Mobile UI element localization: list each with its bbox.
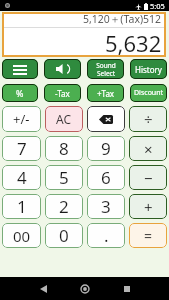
button[interactable]: × (129, 136, 167, 161)
button[interactable]: History (130, 59, 167, 79)
button[interactable]: 3 (87, 194, 125, 219)
button[interactable]: Sound Select (87, 59, 124, 79)
button[interactable]: % (2, 84, 38, 102)
staticText: 0 (59, 224, 69, 247)
staticText: 2 (59, 195, 69, 218)
button[interactable]: -Tax (44, 84, 81, 102)
staticText: 4 (17, 166, 27, 189)
staticText: 8 (59, 137, 69, 160)
staticText: 5,632 (105, 28, 162, 56)
staticText: × (144, 139, 153, 159)
staticText: 00 (13, 226, 31, 246)
staticText: = (144, 226, 153, 245)
button[interactable]: +/- (2, 106, 41, 132)
staticText: AC (56, 111, 72, 127)
button[interactable]: 2 (45, 194, 83, 219)
button[interactable]: AC (45, 106, 83, 132)
staticText: History (135, 64, 162, 75)
staticText: + (144, 197, 153, 217)
button[interactable]: Menu (2, 59, 38, 79)
button[interactable]: 7 (2, 136, 41, 161)
button[interactable]: 4 (2, 165, 41, 190)
staticText: +Tax (97, 88, 115, 99)
button[interactable]: 00 (2, 223, 41, 248)
button[interactable]: 8 (45, 136, 83, 161)
button[interactable]: 9 (87, 136, 125, 161)
staticText: 7 (17, 137, 27, 160)
button[interactable]: Back (22, 277, 64, 300)
staticText: Discount (134, 88, 164, 98)
button[interactable]: 0 (45, 223, 83, 248)
button[interactable]: Discount (130, 84, 167, 102)
staticText: % (16, 87, 24, 99)
button[interactable]: . (87, 223, 125, 248)
staticText: Sound Select (96, 61, 116, 78)
button[interactable]: Sound on (44, 59, 81, 79)
staticText: -Tax (55, 88, 70, 99)
staticText: 5 (59, 166, 69, 189)
button[interactable]: 1 (2, 194, 41, 219)
button[interactable]: + (129, 194, 167, 219)
button[interactable]: Home (64, 277, 106, 300)
staticText: +/- (13, 110, 30, 128)
button[interactable]: − (129, 165, 167, 190)
staticText: 5,120＋(Tax)512 (83, 12, 162, 26)
staticText: 3 (101, 195, 111, 218)
button[interactable]: Recent apps (106, 277, 148, 300)
button[interactable]: = (129, 223, 167, 248)
button[interactable]: 6 (87, 165, 125, 190)
staticText: 5:05 (150, 1, 165, 11)
staticText: − (144, 168, 153, 188)
button[interactable]: +Tax (87, 84, 124, 102)
staticText: ÷ (144, 109, 153, 129)
staticText: 1 (17, 195, 27, 218)
button[interactable]: ÷ (129, 106, 167, 132)
button[interactable]: 5 (45, 165, 83, 190)
staticText: 9 (101, 137, 111, 160)
staticText: . (104, 224, 109, 247)
button[interactable]: Backspace (87, 106, 125, 132)
staticText: 6 (101, 166, 111, 189)
